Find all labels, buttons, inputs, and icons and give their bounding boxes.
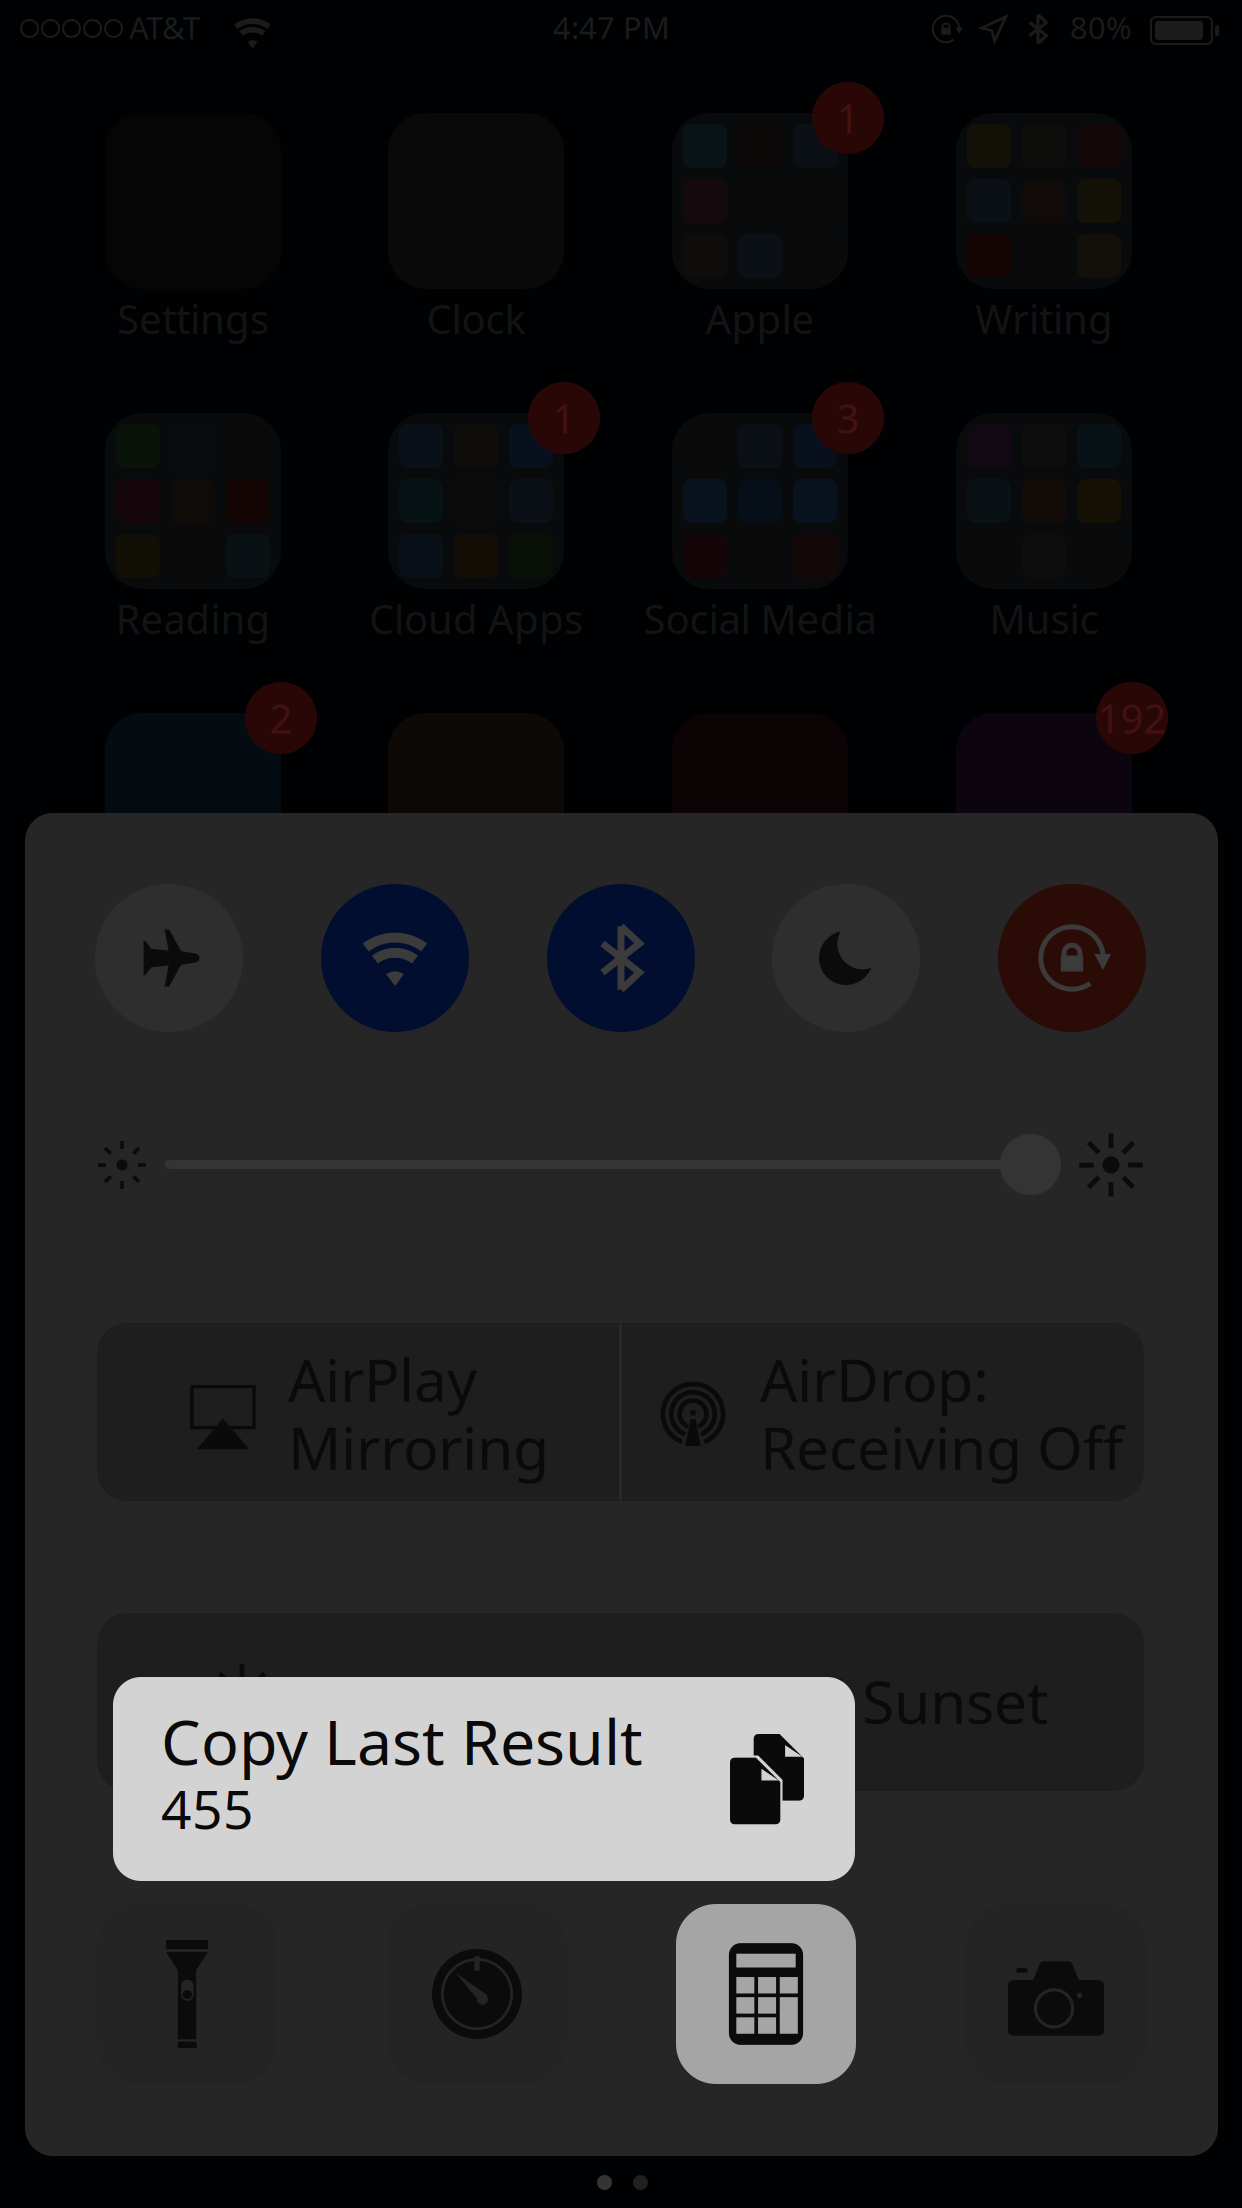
button[interactable]: Copy Last Result, 455 [113,1677,855,1881]
button[interactable]: Bluetooth [547,884,695,1032]
staticText: AT&T [129,7,200,48]
button[interactable]: Timer [387,1904,567,2084]
staticText: AirPlay [288,1340,477,1418]
staticText: Music [989,592,1098,645]
button[interactable]: Do Not Disturb [772,884,920,1032]
staticText: 2 [269,691,292,744]
staticText: Cloud Apps [369,592,583,645]
button[interactable]: AirDrop: Receiving Off [621,1323,1144,1501]
staticText: 1 [552,391,575,444]
staticText: Receiving Off [760,1408,1123,1486]
staticText: 3 [836,391,859,444]
button[interactable]: Portrait Orientation Lock [998,884,1146,1032]
button[interactable]: Calculator [676,1904,856,2084]
staticText: Social Media [643,592,876,645]
staticText: 455 [161,1773,254,1844]
button[interactable]: Flashlight [97,1904,277,2084]
button[interactable]: AirPlay Mirroring [97,1323,620,1501]
button[interactable]: Night Shift, Off Until Sunset [97,1613,1144,1791]
staticText: Reading [115,592,270,645]
staticText: Night Shift: Off Until Sunset [293,1662,1048,1740]
staticText: Copy Last Result [161,1699,643,1782]
staticText: Apple [705,292,814,345]
staticText: 1 [836,91,859,144]
staticText: Clock [426,292,525,345]
staticText: Mirroring [288,1408,549,1486]
staticText: AirDrop: [760,1340,989,1418]
button[interactable]: Camera [966,1904,1146,2084]
staticText: Settings [117,292,269,345]
button[interactable]: Wi-Fi [321,884,469,1032]
staticText: 192 [1097,691,1166,744]
staticText: 4:47 PM [553,7,670,48]
staticText: 80% [1070,7,1131,48]
staticText: Writing [975,292,1113,345]
button[interactable]: Airplane Mode [95,884,243,1032]
